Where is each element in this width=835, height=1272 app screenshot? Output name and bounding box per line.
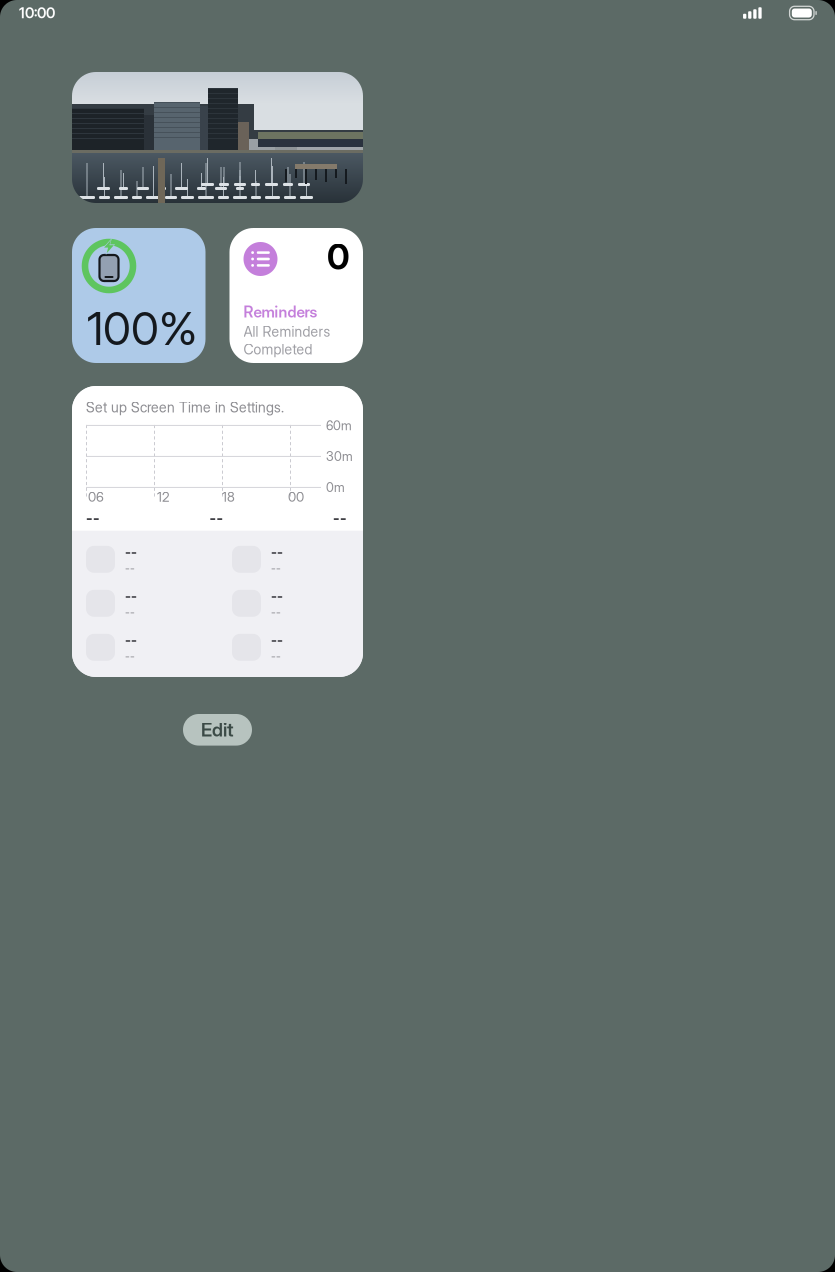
staticText: 06 <box>88 489 104 505</box>
button[interactable]: Reminders, 0, all reminders completed <box>229 228 363 363</box>
staticText: Set up Screen Time in Settings. <box>86 399 284 416</box>
staticText: -- <box>209 509 223 527</box>
staticText: -- <box>125 588 137 604</box>
staticText: -- <box>271 606 281 619</box>
staticText: 0m <box>326 480 345 495</box>
staticText: -- <box>125 562 135 575</box>
staticText: -- <box>125 650 135 663</box>
staticText: -- <box>271 588 283 604</box>
staticText: Edit <box>201 718 234 741</box>
staticText: -- <box>271 562 281 575</box>
staticText: Completed <box>243 341 312 358</box>
staticText: All Reminders <box>243 323 330 340</box>
staticText: -- <box>86 509 100 527</box>
staticText: 12 <box>157 489 169 505</box>
staticText: -- <box>271 650 281 663</box>
button[interactable]: Screen Time <box>72 386 363 677</box>
staticText: -- <box>271 632 283 648</box>
staticText: -- <box>125 544 137 560</box>
button[interactable]: Photos widget <box>72 72 363 203</box>
staticText: 30m <box>326 449 353 464</box>
staticText: 0 <box>327 236 350 278</box>
staticText: 100% <box>87 301 197 356</box>
staticText: 18 <box>222 489 235 505</box>
staticText: -- <box>125 632 137 648</box>
button[interactable]: Edit <box>183 714 252 746</box>
staticText: -- <box>125 606 135 619</box>
staticText: -- <box>271 544 283 560</box>
staticText: 10:00 <box>19 4 55 22</box>
staticText: 00 <box>288 489 304 505</box>
button[interactable]: Battery, 100 percent, charging <box>72 228 205 363</box>
staticText: 60m <box>326 418 352 433</box>
staticText: -- <box>333 509 347 527</box>
staticText: Reminders <box>243 303 317 321</box>
